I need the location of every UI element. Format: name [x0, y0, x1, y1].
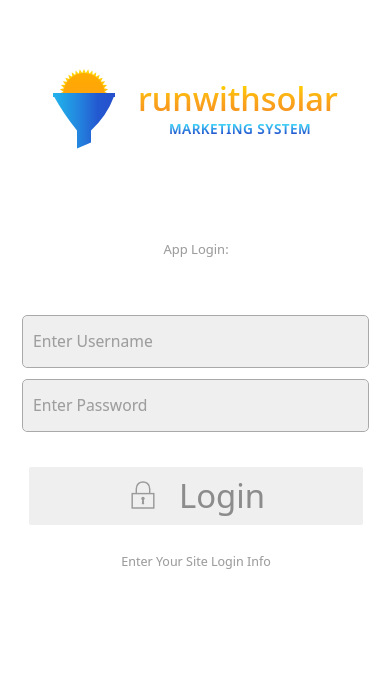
staticText: Enter Your Site Login Info	[0, 553, 392, 570]
staticText: MARKETING SYSTEM	[169, 119, 312, 138]
button[interactable]: Enter Username	[22, 315, 369, 368]
button[interactable]: Lock	[29, 467, 363, 525]
staticText: Enter Password	[33, 394, 148, 415]
other: Lock	[131, 481, 155, 509]
staticText: runwithsolar	[138, 76, 338, 120]
other: runwithsolar logo	[53, 71, 115, 149]
staticText: Enter Username	[33, 330, 153, 351]
button[interactable]: Enter Password	[22, 379, 369, 432]
staticText: App Login:	[0, 240, 392, 258]
staticText: Login	[179, 473, 265, 518]
